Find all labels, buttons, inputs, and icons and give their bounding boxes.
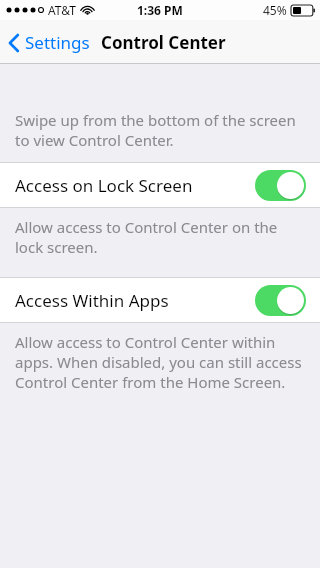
- staticText: Access on Lock Screen: [15, 174, 193, 197]
- staticText: Allow access to Control Center on the lo…: [15, 217, 302, 257]
- staticText: Allow access to Control Center within ap…: [15, 332, 302, 392]
- button[interactable]: Access Within Apps: [0, 278, 320, 322]
- button[interactable]: Access on Lock Screen: [0, 163, 320, 207]
- button[interactable]: Settings: [0, 27, 98, 58]
- staticText: Swipe up from the bottom of the screen t…: [15, 110, 298, 150]
- staticText: AT&T: [48, 2, 76, 18]
- staticText: Settings: [25, 31, 90, 54]
- staticText: Control Center: [101, 31, 226, 54]
- staticText: 1:36 PM: [137, 2, 183, 18]
- button[interactable]: Toggle: [255, 285, 306, 316]
- button[interactable]: Toggle: [255, 170, 306, 201]
- staticText: 45%: [263, 2, 287, 18]
- staticText: Access Within Apps: [15, 289, 169, 312]
